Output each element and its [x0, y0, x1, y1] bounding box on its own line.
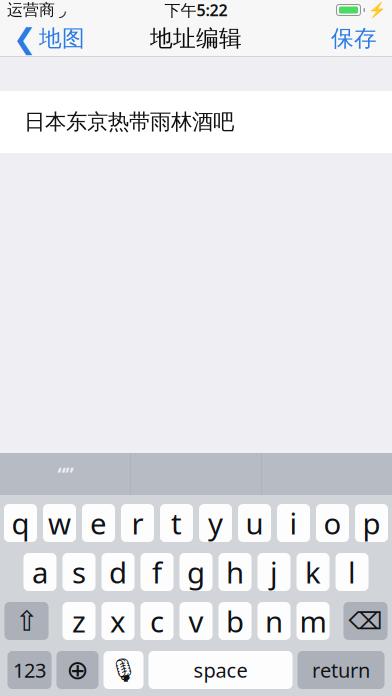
- button[interactable]: “”: [0, 453, 130, 495]
- button[interactable]: y: [199, 504, 232, 542]
- button[interactable]: i: [277, 504, 310, 542]
- button[interactable]: m: [296, 602, 329, 640]
- staticText: space: [193, 657, 247, 683]
- staticText: p: [362, 503, 380, 542]
- staticText: r: [131, 503, 143, 542]
- staticText: n: [265, 601, 283, 640]
- staticText: ⊕: [66, 655, 88, 685]
- staticText: l: [348, 552, 356, 591]
- button[interactable]: e: [82, 504, 115, 542]
- button[interactable]: n: [257, 602, 290, 640]
- button[interactable]: p: [355, 504, 388, 542]
- button[interactable]: u: [238, 504, 271, 542]
- staticText: y: [208, 503, 223, 542]
- button[interactable]: g: [179, 553, 212, 591]
- button[interactable]: s: [62, 553, 95, 591]
- button[interactable]: 123: [7, 651, 51, 689]
- button[interactable]: 日本东京热带雨林酒吧: [0, 91, 392, 153]
- staticText: 日本东京热带雨林酒吧: [24, 109, 234, 135]
- staticText: ❮: [13, 23, 36, 54]
- staticText: g: [187, 552, 205, 591]
- button[interactable]: v: [179, 602, 212, 640]
- staticText: a: [32, 552, 48, 591]
- staticText: c: [150, 601, 164, 640]
- staticText: 保存: [331, 25, 377, 52]
- staticText: k: [305, 552, 321, 591]
- button[interactable]: Shift: [4, 602, 48, 640]
- staticText: q: [11, 503, 29, 542]
- staticText: v: [188, 601, 203, 640]
- button[interactable]: b: [218, 602, 251, 640]
- button[interactable]: Dictate: [103, 651, 143, 689]
- button[interactable]: d: [101, 553, 134, 591]
- staticText: ⇧: [15, 605, 38, 637]
- staticText: u: [245, 503, 263, 542]
- button[interactable]: w: [43, 504, 76, 542]
- staticText: j: [270, 552, 278, 591]
- button[interactable]: return: [297, 651, 384, 689]
- staticText: 123: [13, 657, 46, 683]
- staticText: b: [226, 601, 244, 640]
- button[interactable]: x: [101, 602, 134, 640]
- button[interactable]: space: [148, 651, 292, 689]
- staticText: t: [171, 503, 182, 542]
- staticText: z: [72, 601, 86, 640]
- button[interactable]: Next keyboard: [56, 651, 98, 689]
- button[interactable]: Delete: [343, 602, 387, 640]
- button[interactable]: 保存: [320, 20, 388, 57]
- staticText: e: [90, 503, 107, 542]
- staticText: m: [299, 601, 326, 640]
- button[interactable]: a: [23, 553, 56, 591]
- button[interactable]: k: [296, 553, 329, 591]
- staticText: i: [289, 503, 297, 542]
- staticText: 地图: [39, 25, 85, 52]
- button[interactable]: l: [335, 553, 368, 591]
- staticText: ◞: [59, 0, 66, 20]
- staticText: h: [226, 552, 244, 591]
- staticText: ⌫: [348, 607, 382, 635]
- staticText: 🎙: [109, 657, 138, 683]
- staticText: 地址编辑: [150, 25, 242, 52]
- button[interactable]: j: [257, 553, 290, 591]
- button[interactable]: c: [140, 602, 173, 640]
- button[interactable]: r: [121, 504, 154, 542]
- staticText: ⚡: [368, 2, 386, 18]
- staticText: 运营商: [7, 0, 55, 20]
- staticText: w: [48, 503, 71, 542]
- staticText: f: [152, 552, 162, 591]
- button[interactable]: f: [140, 553, 173, 591]
- staticText: return: [312, 657, 370, 683]
- staticText: x: [110, 601, 126, 640]
- button[interactable]: o: [316, 504, 349, 542]
- staticText: s: [72, 552, 86, 591]
- button[interactable]: ❮: [4, 20, 94, 57]
- button[interactable]: h: [218, 553, 251, 591]
- staticText: d: [109, 552, 127, 591]
- staticText: 下午5:22: [164, 0, 227, 21]
- button[interactable]: t: [160, 504, 193, 542]
- button[interactable]: q: [4, 504, 37, 542]
- staticText: o: [323, 503, 341, 542]
- button[interactable]: z: [62, 602, 95, 640]
- staticText: “”: [57, 461, 73, 487]
